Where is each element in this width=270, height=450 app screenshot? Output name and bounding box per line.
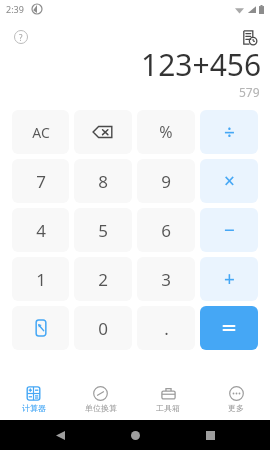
button[interactable]: 4 bbox=[12, 208, 69, 252]
staticText: 计算器 bbox=[22, 403, 46, 413]
staticText: + bbox=[224, 266, 235, 292]
staticText: % bbox=[159, 121, 173, 143]
button[interactable]: − bbox=[200, 208, 258, 252]
button[interactable]: 5 bbox=[74, 208, 132, 252]
staticText: 2:39 bbox=[6, 3, 24, 15]
staticText: 更多 bbox=[228, 403, 244, 413]
button[interactable]: 更多 bbox=[202, 378, 270, 420]
staticText: . bbox=[164, 317, 169, 340]
button[interactable]: ÷ bbox=[200, 110, 258, 154]
button[interactable]: 工具箱 bbox=[134, 378, 202, 420]
staticText: 579 bbox=[239, 84, 260, 100]
button[interactable]: + bbox=[200, 257, 258, 301]
staticText: 0 bbox=[98, 317, 108, 340]
staticText: 单位换算 bbox=[85, 403, 117, 413]
button[interactable]: % bbox=[137, 110, 195, 154]
staticText: 4 bbox=[36, 219, 46, 242]
button[interactable]: AC bbox=[12, 110, 69, 154]
button[interactable]: 1 bbox=[12, 257, 69, 301]
button[interactable]: History bbox=[236, 24, 262, 50]
staticText: − bbox=[224, 217, 235, 243]
button[interactable]: . bbox=[137, 306, 195, 350]
button[interactable]: Expand bbox=[12, 306, 69, 350]
button[interactable]: Equals bbox=[200, 306, 258, 350]
button[interactable]: Recents bbox=[200, 425, 220, 445]
button[interactable]: Back bbox=[50, 425, 70, 445]
button[interactable]: 7 bbox=[12, 159, 69, 203]
button[interactable]: 3 bbox=[137, 257, 195, 301]
staticText: 8 bbox=[98, 170, 108, 193]
button[interactable]: 0 bbox=[74, 306, 132, 350]
button[interactable]: 6 bbox=[137, 208, 195, 252]
staticText: 3 bbox=[161, 268, 171, 291]
button[interactable]: Home bbox=[125, 425, 145, 445]
staticText: AC bbox=[32, 123, 50, 142]
staticText: ÷ bbox=[224, 119, 235, 145]
staticText: 7 bbox=[36, 170, 46, 193]
staticText: 9 bbox=[161, 170, 171, 193]
button[interactable]: × bbox=[200, 159, 258, 203]
staticText: ? bbox=[19, 32, 23, 43]
button[interactable]: Help bbox=[10, 26, 32, 48]
button[interactable]: 单位换算 bbox=[67, 378, 134, 420]
staticText: 2 bbox=[98, 268, 108, 291]
staticText: × bbox=[224, 168, 235, 194]
staticText: 123+456 bbox=[141, 44, 262, 85]
staticText: 6 bbox=[161, 219, 171, 242]
button[interactable]: Backspace bbox=[74, 110, 132, 154]
staticText: 5 bbox=[98, 219, 108, 242]
button[interactable]: 8 bbox=[74, 159, 132, 203]
staticText: 1 bbox=[36, 268, 46, 291]
button[interactable]: 9 bbox=[137, 159, 195, 203]
button[interactable]: 2 bbox=[74, 257, 132, 301]
staticText: 工具箱 bbox=[156, 403, 180, 413]
button[interactable]: 计算器 bbox=[0, 378, 67, 420]
